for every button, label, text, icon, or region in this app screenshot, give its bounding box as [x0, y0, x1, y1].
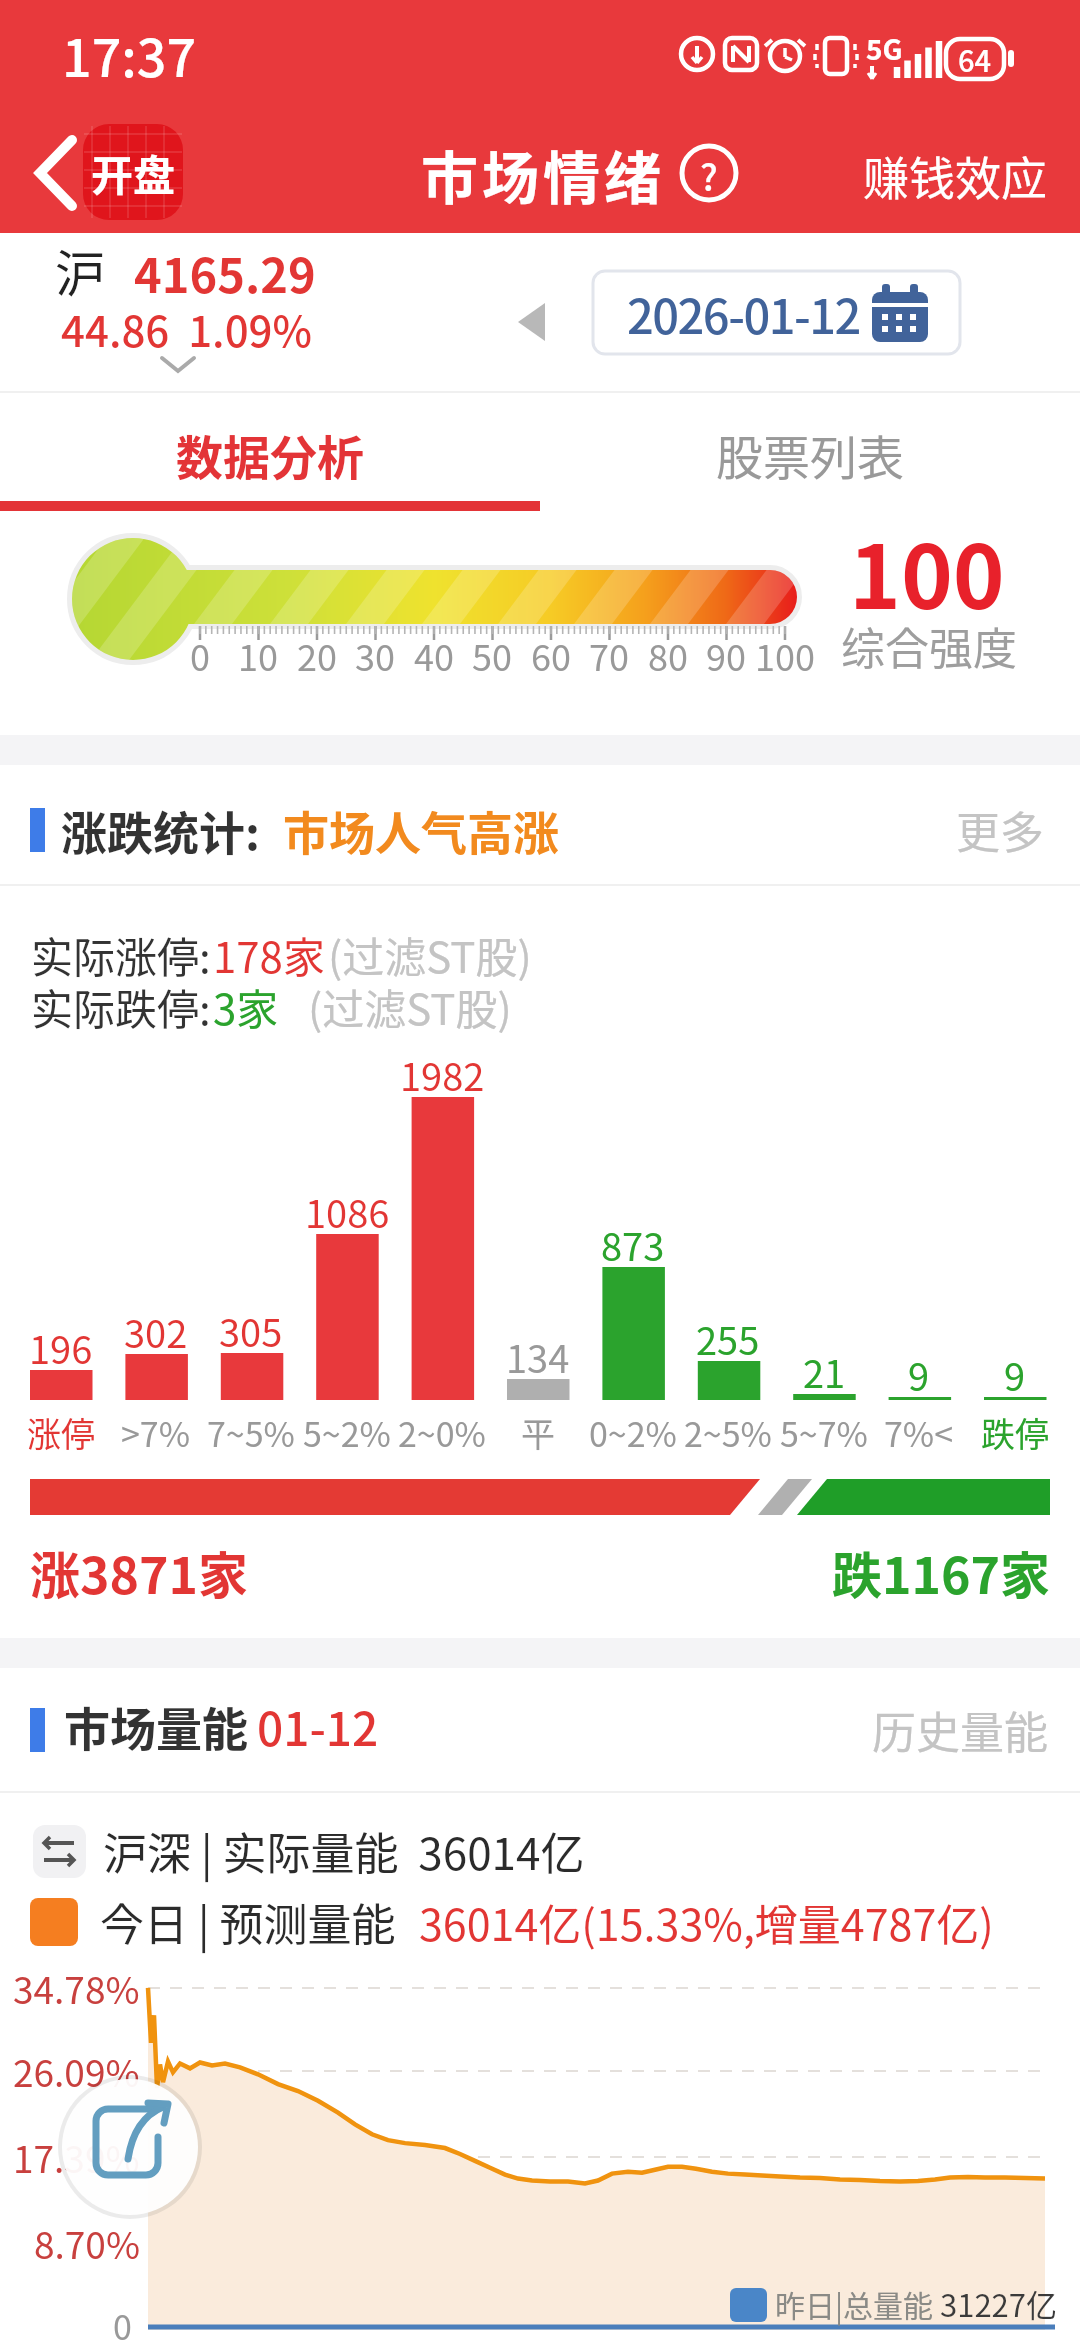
staticText: 9 — [1004, 1347, 1026, 1402]
staticText: 196 — [29, 1320, 93, 1375]
staticText: 0 — [113, 2301, 132, 2340]
staticText: ? — [700, 149, 718, 201]
staticText: 跌1167家 — [832, 1536, 1050, 1608]
staticText: 36014亿(15.33%,增量4787亿) — [419, 1891, 994, 1953]
staticText: 实际跌停: — [31, 976, 211, 1037]
staticText: 34.78% — [13, 1961, 140, 2015]
staticText: 更多 — [956, 798, 1044, 862]
staticText: 100 — [755, 629, 815, 681]
staticText: 0 — [190, 629, 210, 681]
staticText: 涨3871家 — [30, 1536, 248, 1608]
staticText: 0~2% — [589, 1408, 677, 1457]
staticText: 44.86 1.09% — [61, 298, 312, 359]
staticText: 2026-01-12 — [627, 279, 860, 347]
staticText: 开盘 — [91, 142, 176, 203]
staticText: 平 — [521, 1408, 555, 1457]
button[interactable] — [60, 2077, 200, 2217]
staticText: 市场人气高涨 — [283, 797, 559, 864]
button[interactable]: 赚钱效应 — [850, 130, 1060, 220]
staticText: 8.70% — [34, 2216, 140, 2270]
staticText: 4165.29 — [134, 238, 316, 306]
staticText: 赚钱效应 — [863, 142, 1047, 209]
staticText: 涨跌统计: — [61, 797, 260, 864]
staticText: 873 — [601, 1217, 665, 1272]
staticText: 70 — [589, 629, 629, 681]
button[interactable] — [500, 285, 570, 360]
staticText: 3家 — [213, 976, 279, 1037]
button[interactable] — [678, 142, 742, 206]
staticText: 302 — [124, 1304, 188, 1359]
staticText: 1086 — [305, 1184, 390, 1239]
staticText: 134 — [506, 1329, 570, 1384]
staticText: 64 — [958, 38, 992, 80]
staticText: 01-12 — [257, 1693, 379, 1760]
staticText: 31227亿 — [940, 2281, 1058, 2326]
staticText: 1982 — [400, 1047, 485, 1102]
staticText: 实际涨停: — [31, 924, 211, 985]
staticText: 涨停 — [27, 1408, 95, 1457]
staticText: 沪深 | 实际量能 36014亿 — [103, 1819, 585, 1883]
staticText: 10 — [238, 629, 278, 681]
staticText: 40 — [414, 629, 454, 681]
staticText: 80 — [648, 629, 688, 681]
staticText: 综合强度 — [841, 614, 1017, 678]
staticText: 2~0% — [398, 1408, 486, 1457]
staticText: 90 — [706, 629, 746, 681]
staticText: 沪 — [55, 234, 105, 306]
button[interactable]: 数据分析 — [0, 396, 540, 511]
staticText: 7~5% — [207, 1408, 295, 1457]
staticText: 历史量能 — [872, 1698, 1048, 1762]
staticText: 2~5% — [684, 1408, 772, 1457]
staticText: 17:37 — [62, 17, 197, 92]
staticText: 昨日|总量能 — [775, 2282, 934, 2325]
staticText: 178家 — [213, 924, 325, 985]
staticText: 20 — [297, 629, 337, 681]
staticText: 100 — [849, 507, 1005, 627]
staticText: 5G — [866, 28, 903, 69]
staticText: 数据分析 — [176, 420, 364, 488]
button[interactable]: 历史量能 — [860, 1695, 1060, 1765]
staticText: (过滤ST股) — [308, 976, 512, 1037]
button[interactable] — [593, 271, 960, 354]
staticText: 50 — [472, 629, 512, 681]
staticText: 30 — [355, 629, 395, 681]
staticText: 股票列表 — [716, 420, 904, 488]
staticText: >7% — [121, 1408, 191, 1457]
staticText: 市场量能 — [64, 1693, 248, 1760]
button[interactable]: 更多 — [940, 795, 1060, 865]
staticText: 255 — [696, 1311, 760, 1366]
staticText: 305 — [219, 1303, 283, 1358]
staticText: 60 — [531, 629, 571, 681]
staticText: 5~2% — [303, 1408, 391, 1457]
staticText: 9 — [908, 1347, 930, 1402]
staticText: 17.39% — [13, 2130, 140, 2184]
button[interactable]: 股票列表 — [540, 396, 1080, 511]
staticText: 今日 | 预测量能 — [100, 1890, 396, 1954]
staticText: 26.09% — [13, 2044, 140, 2098]
staticText: 5~7% — [780, 1408, 868, 1457]
button[interactable] — [30, 120, 190, 225]
staticText: 跌停 — [981, 1408, 1049, 1457]
staticText: 7%< — [884, 1408, 954, 1457]
staticText: (过滤ST股) — [328, 924, 532, 985]
staticText: 21 — [803, 1344, 846, 1399]
staticText: 市场情绪 — [421, 133, 665, 216]
